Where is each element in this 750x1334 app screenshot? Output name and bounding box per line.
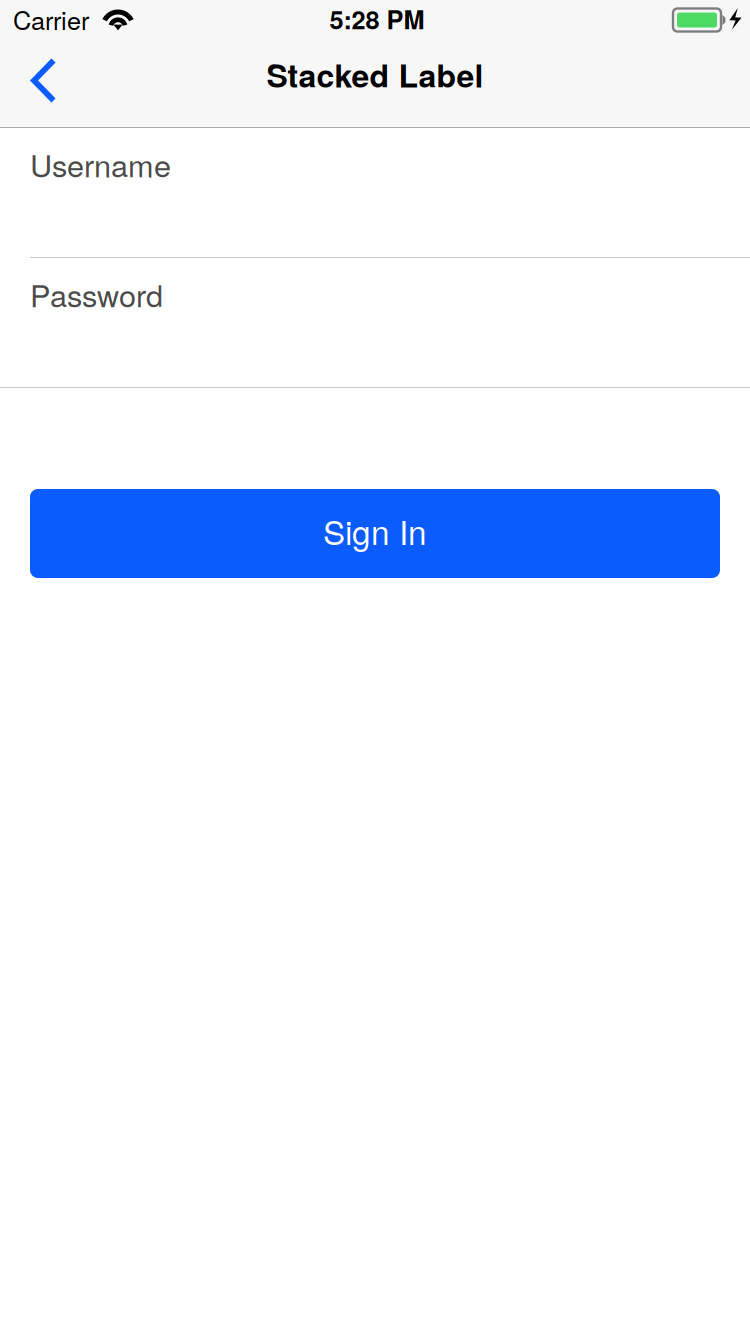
staticText: Stacked Label bbox=[266, 52, 483, 97]
staticText: Password bbox=[30, 272, 163, 316]
button[interactable]: Back bbox=[10, 48, 78, 112]
staticText: Sign In bbox=[323, 507, 427, 554]
staticText: 5:28 PM bbox=[329, 1, 424, 37]
staticText: Username bbox=[30, 142, 171, 186]
button[interactable]: Username bbox=[0, 128, 750, 257]
button[interactable]: Sign In bbox=[30, 489, 720, 578]
button[interactable]: Password bbox=[0, 258, 750, 387]
staticText: Carrier bbox=[13, 1, 89, 37]
